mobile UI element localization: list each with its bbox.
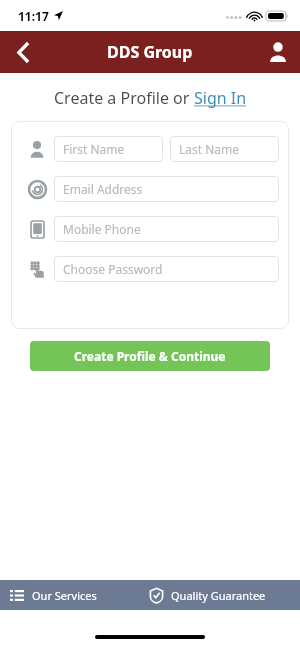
staticText: Sign In xyxy=(194,87,247,109)
button[interactable]: Last Name xyxy=(170,136,279,162)
button[interactable]: Account xyxy=(256,31,300,73)
button[interactable]: Sign In xyxy=(194,87,247,109)
button[interactable]: Create Profile & Continue xyxy=(30,341,270,371)
staticText: 11:17 xyxy=(18,8,49,24)
staticText: Quality Guarantee xyxy=(171,588,266,603)
button[interactable]: Mobile Phone xyxy=(54,216,279,242)
staticText: Create Profile & Continue xyxy=(74,348,226,364)
button[interactable]: Our Services xyxy=(0,580,150,610)
button[interactable]: Back xyxy=(0,31,46,73)
button[interactable]: Email Address xyxy=(54,176,279,202)
button[interactable]: Choose Password xyxy=(54,256,279,282)
staticText: Last Name xyxy=(179,141,240,157)
staticText: DDS Group xyxy=(107,41,193,63)
staticText: First Name xyxy=(63,141,125,157)
staticText: Choose Password xyxy=(63,261,163,277)
button[interactable]: Quality Guarantee xyxy=(150,580,300,610)
staticText: Email Address xyxy=(63,181,143,197)
button[interactable]: First Name xyxy=(54,136,163,162)
staticText: Mobile Phone xyxy=(63,221,141,237)
staticText: Our Services xyxy=(32,588,97,603)
staticText: Create a Profile or xyxy=(54,87,194,109)
